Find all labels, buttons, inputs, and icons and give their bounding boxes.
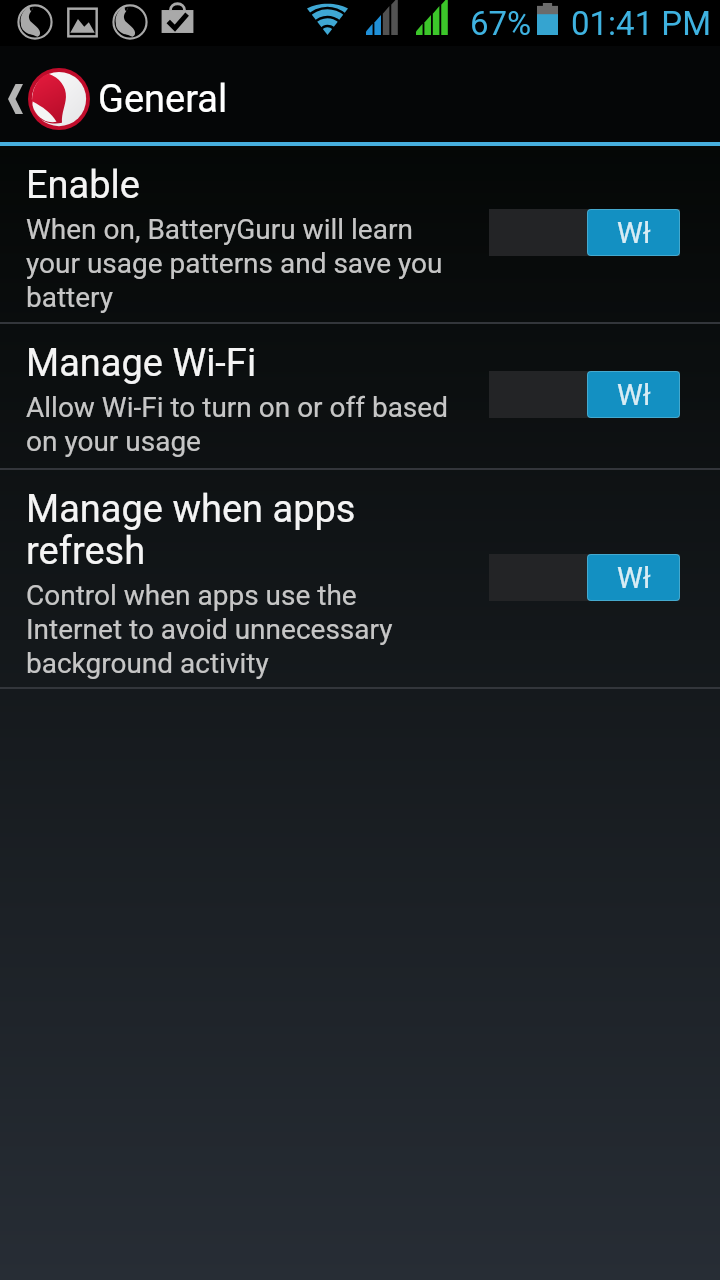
staticText: Allow Wi-Fi to turn on or off based on y… — [26, 391, 456, 458]
button[interactable]: Enable — [0, 146, 720, 322]
staticText: Control when apps use the Internet to av… — [26, 579, 456, 680]
staticText: Wł — [617, 561, 651, 595]
staticText: General — [98, 77, 228, 122]
staticText: Manage Wi-Fi — [26, 341, 257, 386]
staticText: 67% — [470, 4, 532, 43]
staticText: Enable — [26, 163, 140, 208]
button[interactable]: Toggle, on — [489, 208, 680, 256]
button[interactable]: Manage when apps refresh — [0, 470, 720, 687]
button[interactable]: Manage Wi-Fi — [0, 324, 720, 468]
staticText: Wł — [617, 378, 651, 412]
staticText: Wł — [617, 216, 651, 250]
staticText: When on, BatteryGuru will learn your usa… — [26, 213, 456, 314]
staticText: 01:41 PM — [571, 4, 711, 43]
button[interactable]: Toggle, on — [489, 553, 680, 601]
button[interactable]: Toggle, on — [489, 370, 680, 418]
button[interactable]: Navigate up, General — [0, 46, 720, 142]
staticText: Manage when apps refresh — [26, 487, 456, 574]
